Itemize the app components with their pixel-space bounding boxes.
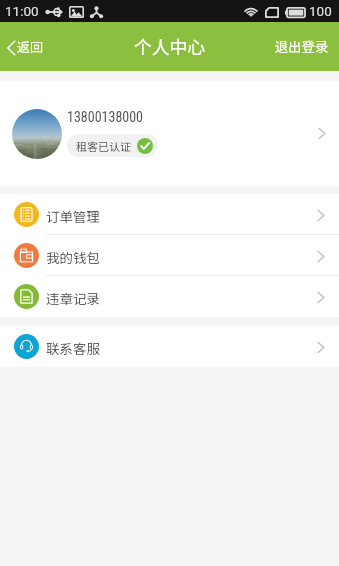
staticText: 返回 [17,37,44,56]
staticText: 个人中心 [134,33,206,59]
staticText: 我的钱包 [46,247,100,267]
button[interactable]: 13800138000 [0,81,339,186]
button[interactable]: 违章记录 [0,276,339,317]
other: Open [316,341,324,354]
staticText: 违章记录 [46,288,100,308]
button[interactable]: 订单管理 [0,194,339,235]
other: Open [316,291,324,304]
other: Open [316,209,324,222]
staticText: 11:00 [5,3,39,19]
staticText: 租客已认证 [76,138,131,154]
other: Open [316,250,324,263]
button[interactable]: 退出登录 [261,23,339,70]
staticText: 联系客服 [46,338,100,358]
button[interactable]: 联系客服 [0,326,339,367]
staticText: 13800138000 [67,109,144,125]
staticText: 100 [309,3,332,19]
button[interactable]: 返回 [0,22,56,71]
other: Open [317,127,325,140]
staticText: 订单管理 [46,206,100,226]
button[interactable]: 我的钱包 [0,235,339,276]
